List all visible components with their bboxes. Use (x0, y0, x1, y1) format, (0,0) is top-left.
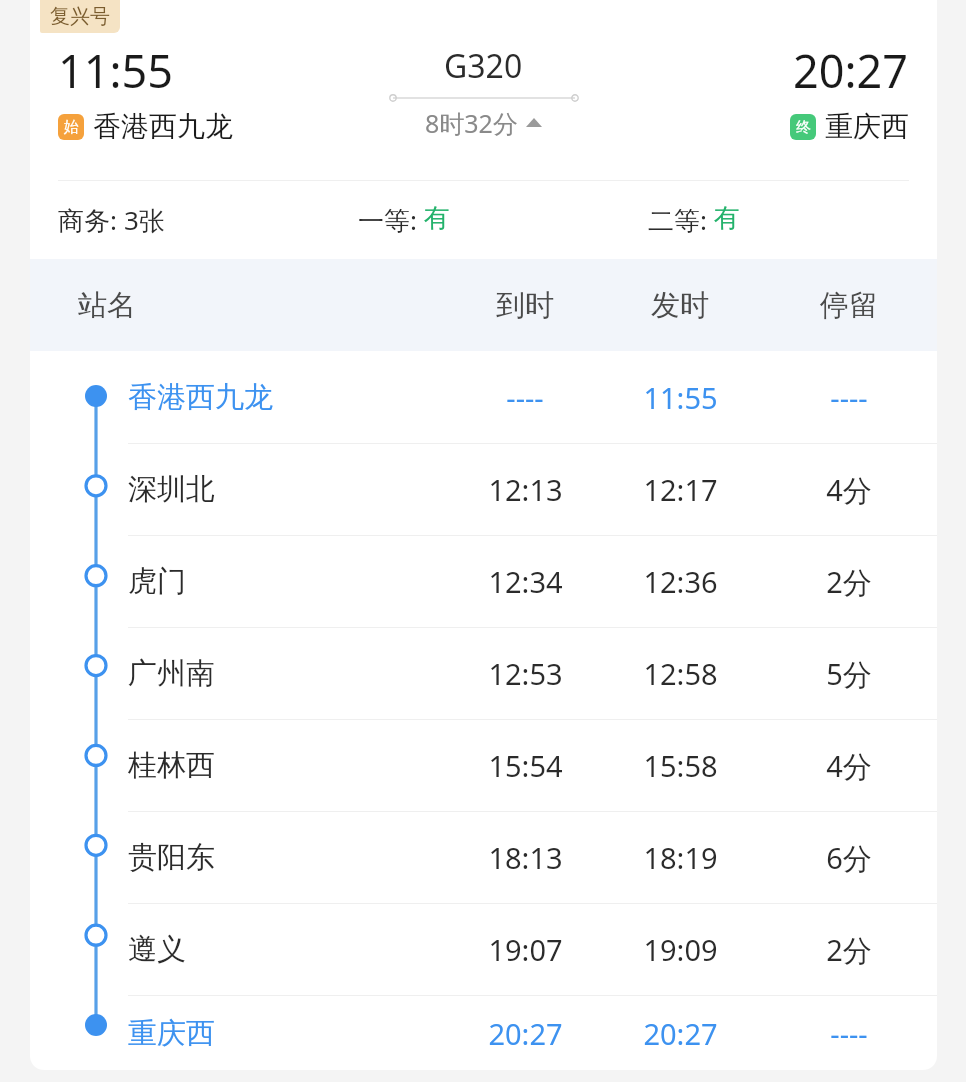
button[interactable]: 商务: (58, 202, 358, 238)
staticText: 4分 (826, 746, 872, 786)
staticText: 6分 (826, 838, 872, 878)
staticText: 终 (796, 118, 811, 137)
staticText: 复兴号 (50, 4, 110, 29)
staticText: 香港西九龙 (93, 109, 233, 144)
staticText: 广州南 (128, 655, 215, 692)
staticText: 11:55 (58, 40, 174, 101)
staticText: 二等: (648, 202, 714, 238)
staticText: 贵阳东 (128, 839, 215, 876)
staticText: 桂林西 (128, 747, 215, 784)
staticText: 20:27 (793, 40, 909, 101)
staticText: 12:36 (643, 562, 718, 601)
staticText: 站名 (78, 287, 136, 324)
staticText: 商务: (58, 202, 124, 238)
staticText: 11:55 (643, 378, 718, 417)
staticText: 一等: (358, 202, 424, 238)
staticText: 12:53 (488, 654, 563, 693)
staticText: 有 (424, 202, 450, 235)
staticText: 12:17 (643, 470, 718, 509)
staticText: 12:34 (488, 562, 563, 601)
button[interactable]: 重庆西 (30, 996, 937, 1070)
staticText: 12:58 (643, 654, 718, 693)
staticText: 遵义 (128, 931, 186, 968)
staticText: 重庆西 (128, 1015, 215, 1052)
staticText: 2分 (826, 562, 872, 602)
button[interactable]: 虎门 (30, 536, 937, 627)
button[interactable]: 遵义 (30, 904, 937, 995)
staticText: ---- (506, 378, 544, 417)
staticText: ---- (830, 1014, 868, 1053)
staticText: 19:07 (488, 930, 563, 969)
staticText: 有 (714, 202, 740, 235)
staticText: 始 (64, 118, 79, 137)
staticText: ---- (830, 378, 868, 417)
staticText: 停留 (820, 287, 878, 324)
button[interactable]: 贵阳东 (30, 812, 937, 903)
staticText: 5分 (826, 654, 872, 694)
button[interactable]: 广州南 (30, 628, 937, 719)
staticText: 8时32分 (425, 106, 518, 140)
staticText: 深圳北 (128, 471, 215, 508)
button[interactable]: 一等: (358, 202, 648, 238)
staticText: 4分 (826, 470, 872, 510)
staticText: 香港西九龙 (128, 379, 273, 416)
button[interactable]: 桂林西 (30, 720, 937, 811)
staticText: 虎门 (128, 563, 186, 600)
staticText: 12:13 (488, 470, 563, 509)
staticText: 15:58 (643, 746, 718, 785)
staticText: 20:27 (643, 1014, 718, 1053)
button[interactable]: 香港西九龙 (30, 351, 937, 443)
staticText: 重庆西 (825, 109, 909, 144)
staticText: 到时 (496, 287, 554, 324)
staticText: 18:19 (643, 838, 718, 877)
staticText: 18:13 (488, 838, 563, 877)
staticText: 2分 (826, 930, 872, 970)
staticText: 发时 (651, 287, 709, 324)
staticText: 15:54 (488, 746, 563, 785)
staticText: 20:27 (488, 1014, 563, 1053)
staticText: 19:09 (643, 930, 718, 969)
button[interactable]: 深圳北 (30, 444, 937, 535)
button[interactable]: 二等: (648, 202, 740, 238)
staticText: G320 (444, 44, 523, 88)
staticText: 3张 (124, 202, 165, 238)
